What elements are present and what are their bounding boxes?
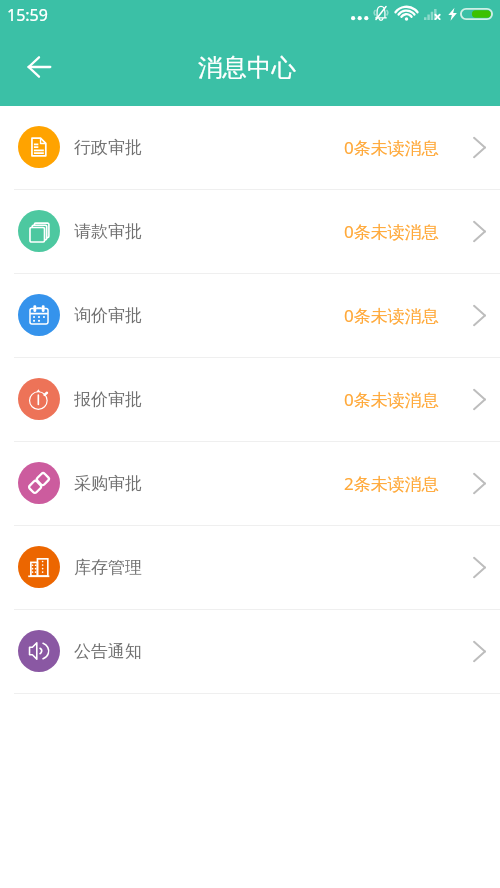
staticText: 15:59 [7, 4, 48, 26]
button[interactable]: 报价审批 [0, 358, 500, 441]
button[interactable]: 询价审批 [0, 274, 500, 357]
staticText: 0条未读消息 [344, 304, 439, 327]
staticText: 0条未读消息 [344, 136, 439, 159]
staticText: 消息中心 [0, 52, 497, 83]
button[interactable]: 行政审批 [0, 106, 500, 189]
button[interactable]: 库存管理 [0, 526, 500, 609]
button[interactable]: 请款审批 [0, 190, 500, 273]
staticText: 询价审批 [74, 305, 142, 326]
staticText: 行政审批 [74, 137, 142, 158]
button[interactable]: 采购审批 [0, 442, 500, 525]
staticText: 报价审批 [74, 389, 142, 410]
staticText: 库存管理 [74, 557, 142, 578]
button[interactable]: 公告通知 [0, 610, 500, 693]
staticText: 公告通知 [74, 641, 142, 662]
staticText: 2条未读消息 [344, 472, 439, 495]
button[interactable]: Back [16, 44, 62, 90]
staticText: 请款审批 [74, 221, 142, 242]
staticText: 采购审批 [74, 473, 142, 494]
staticText: 0条未读消息 [344, 220, 439, 243]
staticText: 0条未读消息 [344, 388, 439, 411]
